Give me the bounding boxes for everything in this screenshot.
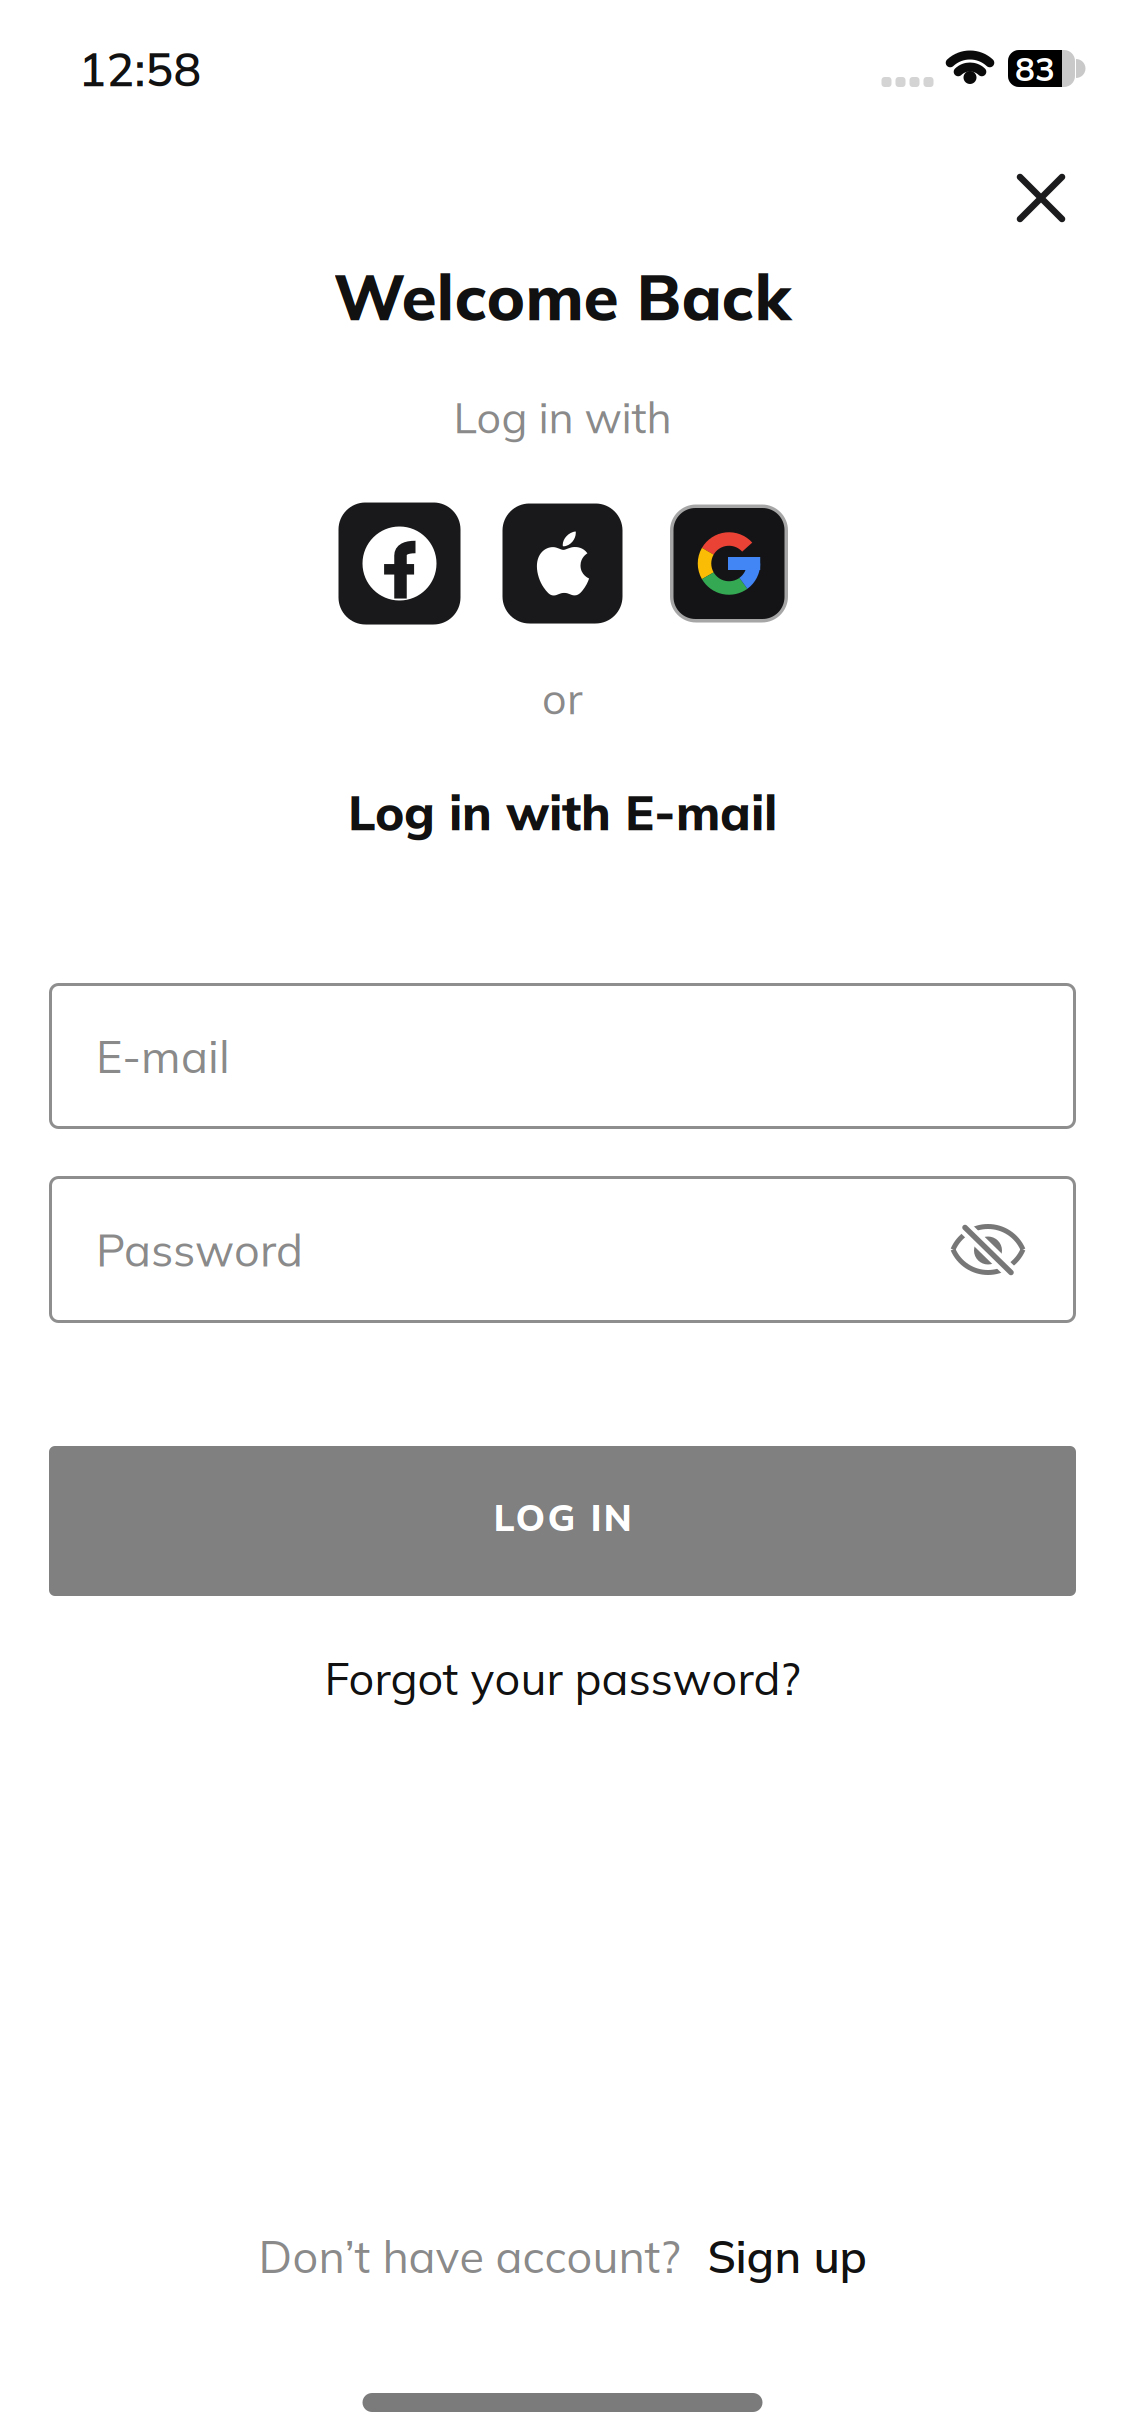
button[interactable]: E-mail xyxy=(49,983,1076,1129)
staticText: Don’t have account? xyxy=(258,2228,680,2284)
staticText: Log in with xyxy=(453,390,671,444)
staticText: LOG IN xyxy=(493,1494,631,1540)
staticText: Log in with E-mail xyxy=(348,781,777,843)
staticText: E-mail xyxy=(96,1028,230,1084)
staticText: Welcome Back xyxy=(333,256,791,336)
button[interactable]: Password xyxy=(49,1176,1076,1323)
staticText: 12:58 xyxy=(78,40,201,98)
button[interactable] xyxy=(338,502,460,624)
button[interactable]: Sign up xyxy=(707,2228,866,2284)
staticText: Password xyxy=(96,1221,303,1278)
button[interactable]: LOG IN xyxy=(49,1446,1076,1596)
staticText: 83 xyxy=(1015,48,1055,89)
staticText: Sign up xyxy=(707,2228,866,2284)
button[interactable] xyxy=(501,502,623,624)
staticText: Forgot your password? xyxy=(324,1650,800,1706)
button[interactable] xyxy=(668,502,790,624)
staticText: or xyxy=(542,671,583,725)
button[interactable] xyxy=(1011,168,1071,228)
button[interactable]: Forgot your password? xyxy=(324,1650,800,1706)
